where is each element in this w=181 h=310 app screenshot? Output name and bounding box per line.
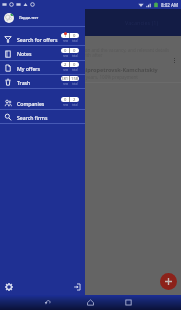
- button[interactable]: Back: [44, 298, 52, 306]
- button[interactable]: Log out: [73, 283, 81, 291]
- staticText: total: [72, 68, 78, 72]
- staticText: Companies: [17, 100, 45, 107]
- staticText: new: [63, 82, 69, 86]
- staticText: new: [63, 68, 69, 72]
- button[interactable]: Add vacancy: [160, 273, 177, 290]
- staticText: 2: [73, 97, 76, 102]
- staticText: 0: [73, 33, 76, 38]
- staticText: total: [72, 39, 78, 43]
- staticText: nipropetrovsk-Kamchatskiy: [82, 66, 158, 73]
- staticText: 0: [73, 62, 76, 67]
- staticText: Search firms: [17, 114, 48, 121]
- staticText: new: [63, 54, 69, 58]
- button[interactable]: Trash: [0, 75, 85, 89]
- staticText: 0: [64, 48, 67, 53]
- button[interactable]: Notes: [0, 46, 85, 61]
- staticText: Trash: [17, 79, 31, 86]
- staticText: 158: [71, 76, 79, 81]
- staticText: total: [72, 54, 78, 58]
- button[interactable]: Recents: [125, 299, 132, 306]
- staticText: tion and the vacancy, and relevant detai…: [82, 47, 177, 59]
- staticText: Search for offers: [17, 36, 58, 43]
- staticText: 2: [64, 62, 67, 67]
- button[interactable]: My offers: [0, 61, 85, 75]
- button[interactable]: Home: [87, 299, 94, 306]
- staticText: total: [72, 103, 78, 107]
- staticText: 0: [64, 97, 67, 102]
- staticText: 8:02 AM: [161, 2, 179, 8]
- button[interactable]: Search firms: [0, 110, 85, 124]
- staticText: Ларди-тест: [19, 15, 39, 20]
- button[interactable]: Search for offers: [0, 27, 85, 46]
- staticText: 181: [61, 76, 69, 81]
- staticText: new: [63, 103, 69, 107]
- staticText: My offers: [17, 65, 40, 72]
- button[interactable]: Settings: [5, 283, 13, 291]
- staticText: 2 years, 100% prepayment: [82, 74, 138, 80]
- staticText: Notes: [17, 50, 32, 57]
- staticText: new: [63, 39, 69, 43]
- staticText: 0: [73, 48, 76, 53]
- button[interactable]: Companies: [0, 96, 85, 110]
- staticText: 1: [64, 33, 67, 38]
- staticText: total: [72, 82, 78, 86]
